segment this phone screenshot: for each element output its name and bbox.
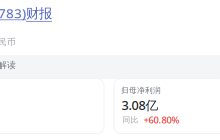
staticText: 783)财报 — [0, 4, 52, 22]
staticText: 同比 — [122, 115, 138, 125]
staticText: 解读 — [0, 59, 16, 71]
staticText: 归母净利润 — [121, 86, 161, 95]
staticText: 3.08亿 — [121, 96, 158, 114]
button[interactable]: 783)财报 — [0, 4, 52, 22]
staticText: +60.80% — [143, 114, 179, 126]
button[interactable]: 归母净利润 — [114, 78, 220, 133]
staticText: 民币 — [0, 36, 16, 48]
